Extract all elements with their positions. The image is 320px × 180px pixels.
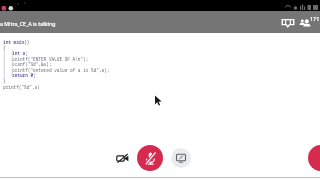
staticText: #include<stdlib.h> <box>3 28 51 34</box>
staticText: 171 <box>310 15 320 22</box>
button[interactable]: Unmute microphone <box>137 145 163 171</box>
staticText: return 0; <box>12 72 36 78</box>
button[interactable]: Leave call <box>308 145 320 171</box>
staticText: #include<stdio.h> <box>3 23 48 29</box>
staticText: int main() <box>3 39 30 45</box>
button[interactable]: Stop presenting <box>171 148 191 168</box>
button[interactable]: Turn on camera <box>110 146 134 170</box>
staticText: scanf("%d",&a); <box>12 61 52 67</box>
staticText: } <box>3 78 6 84</box>
button[interactable]: Chat <box>277 12 298 32</box>
staticText: int a; <box>12 50 28 56</box>
staticText: printf("entered value of a is %d",a); <box>12 67 110 73</box>
staticText: { <box>3 45 6 51</box>
staticText: a Mitra_CE_A is talking <box>0 20 56 27</box>
staticText: printf("ENTER VALUE OF A\n"); <box>12 56 89 62</box>
staticText: printf("%d",a) <box>3 84 40 90</box>
button[interactable]: Participants <box>297 12 318 32</box>
